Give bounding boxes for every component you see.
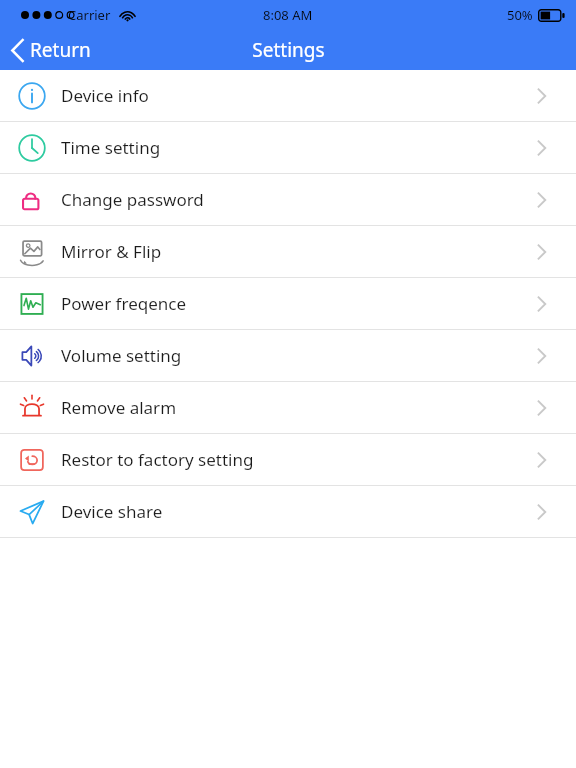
button[interactable]: Restore to factory setting [0,434,576,485]
button[interactable]: Volume setting [0,330,576,381]
staticText: Settings [252,37,325,63]
button[interactable]: Change password [0,174,576,225]
button[interactable]: Time setting [0,122,576,173]
staticText: Carrier [68,6,111,24]
button[interactable]: Device share [0,486,576,537]
staticText: Return [30,37,91,63]
other: Time setting [16,132,48,164]
staticText: Volume setting [61,344,182,367]
button[interactable]: Mirror and flip [0,226,576,277]
button[interactable]: Device info [0,70,576,121]
other: Mirror and flip [16,236,48,268]
staticText: 8:08 AM [263,6,313,24]
other: Remove alarm [16,392,48,424]
staticText: Mirror & Flip [61,240,162,263]
staticText: 50% [507,6,533,24]
other: Power frequence [16,288,48,320]
staticText: Time setting [61,136,161,159]
other: Change password [16,184,48,216]
other: Device info [16,80,48,112]
other: Volume setting [16,340,48,372]
staticText: Restor to factory setting [61,448,254,471]
button[interactable]: Return [0,30,107,70]
other: Restore to factory setting [16,444,48,476]
staticText: Power freqence [61,292,187,315]
staticText: Change password [61,188,204,211]
other: Device share [16,496,48,528]
staticText: Device info [61,84,149,107]
button[interactable]: Power frequence [0,278,576,329]
button[interactable]: Remove alarm [0,382,576,433]
staticText: Remove alarm [61,396,177,419]
staticText: Device share [61,500,163,523]
